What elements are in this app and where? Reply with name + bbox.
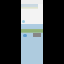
button[interactable]: Play bbox=[23, 34, 27, 37]
